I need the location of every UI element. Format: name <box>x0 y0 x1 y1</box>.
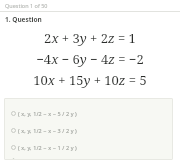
button[interactable]: ( x, y, 1/2 − x − 5 / 2 y ) <box>7 107 170 120</box>
staticText: 2x + 3y + 2z = 1 <box>44 29 136 47</box>
button[interactable]: ( x, y, 1/2 − x − 1 / 2 y ) <box>7 141 170 154</box>
staticText: ( x, y, 1/2 − x − 3 / 2 y ) <box>18 127 77 134</box>
staticText: Question 1 of 50 <box>5 2 48 9</box>
staticText: 10x + 15y + 10z = 5 <box>33 71 147 89</box>
staticText: −4x − 6y − 4z = −2 <box>36 50 144 68</box>
staticText: ( x, y, 1/2 − x − 2 / 2 y ) <box>18 158 77 160</box>
button[interactable]: ( x, y, 1/2 − x − 3 / 2 y ) <box>7 124 170 137</box>
staticText: ( x, y, 1/2 − x − 5 / 2 y ) <box>18 110 77 117</box>
button[interactable]: ( x, y, 1/2 − x − 2 / 2 y ) <box>7 158 170 160</box>
staticText: 1. Question <box>5 15 42 24</box>
staticText: ( x, y, 1/2 − x − 1 / 2 y ) <box>18 144 77 151</box>
